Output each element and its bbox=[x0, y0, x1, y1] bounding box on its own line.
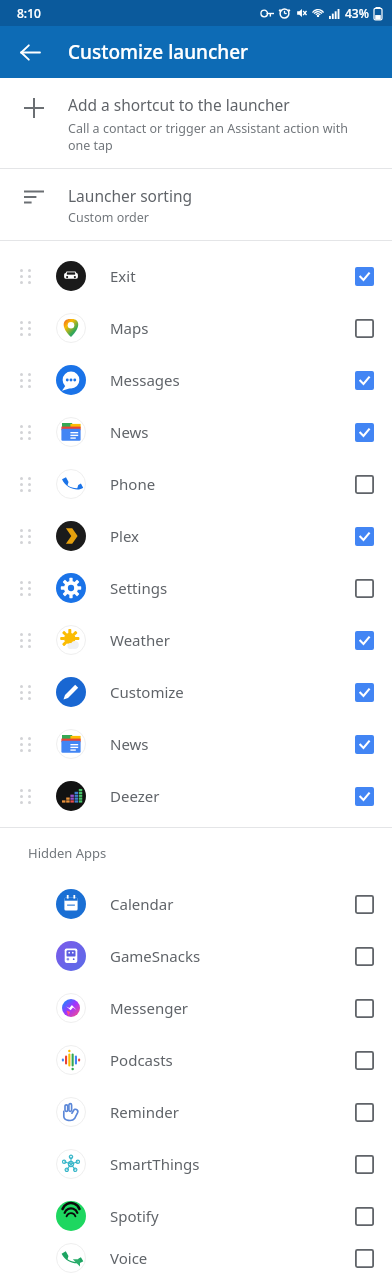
button[interactable]: Launcher sorting bbox=[0, 169, 392, 240]
staticText: Add a shortcut to the launcher bbox=[68, 94, 290, 115]
button[interactable]: Unchecked bbox=[336, 878, 392, 930]
button[interactable]: Unchecked bbox=[336, 458, 392, 510]
staticText: Weather bbox=[110, 630, 336, 650]
button[interactable]: Settings bbox=[0, 562, 392, 614]
staticText: Custom order bbox=[68, 209, 150, 226]
staticText: Hidden Apps bbox=[28, 844, 107, 862]
staticText: Call a contact or trigger an Assistant a… bbox=[68, 120, 358, 154]
staticText: 8:10 bbox=[17, 5, 41, 21]
button[interactable]: Unchecked bbox=[336, 302, 392, 354]
staticText: News bbox=[110, 734, 336, 754]
button[interactable]: Unchecked bbox=[336, 1190, 392, 1242]
button[interactable]: Customize bbox=[0, 666, 392, 718]
staticText: Calendar bbox=[110, 894, 336, 914]
staticText: Spotify bbox=[110, 1206, 336, 1226]
button[interactable]: Checked bbox=[336, 510, 392, 562]
button[interactable]: Calendar bbox=[0, 878, 392, 930]
button[interactable]: Unchecked bbox=[336, 1086, 392, 1138]
staticText: Maps bbox=[110, 318, 336, 338]
staticText: SmartThings bbox=[110, 1154, 336, 1174]
staticText: GameSnacks bbox=[110, 946, 336, 966]
button[interactable]: Unchecked bbox=[336, 562, 392, 614]
button[interactable]: Unchecked bbox=[336, 1242, 392, 1274]
staticText: Messenger bbox=[110, 998, 336, 1018]
staticText: Customize bbox=[110, 682, 336, 702]
button[interactable]: News bbox=[0, 718, 392, 770]
staticText: News bbox=[110, 422, 336, 442]
button[interactable]: Spotify bbox=[0, 1190, 392, 1242]
staticText: Podcasts bbox=[110, 1050, 336, 1070]
button[interactable]: Checked bbox=[336, 406, 392, 458]
button[interactable]: Checked bbox=[336, 718, 392, 770]
button[interactable]: News bbox=[0, 406, 392, 458]
button[interactable]: Deezer bbox=[0, 770, 392, 822]
staticText: Exit bbox=[110, 266, 336, 286]
button[interactable]: Unchecked bbox=[336, 1034, 392, 1086]
button[interactable]: Unchecked bbox=[336, 930, 392, 982]
button[interactable]: Unchecked bbox=[336, 1138, 392, 1190]
button[interactable]: Checked bbox=[336, 614, 392, 666]
button[interactable]: Exit bbox=[0, 250, 392, 302]
button[interactable]: Voice bbox=[0, 1242, 392, 1274]
staticText: Voice bbox=[110, 1248, 336, 1268]
button[interactable]: Checked bbox=[336, 354, 392, 406]
button[interactable]: Checked bbox=[336, 770, 392, 822]
button[interactable]: Messages bbox=[0, 354, 392, 406]
button[interactable]: Add a shortcut to the launcher bbox=[0, 78, 392, 168]
button[interactable]: Reminder bbox=[0, 1086, 392, 1138]
button[interactable]: Maps bbox=[0, 302, 392, 354]
button[interactable]: SmartThings bbox=[0, 1138, 392, 1190]
staticText: Reminder bbox=[110, 1102, 336, 1122]
button[interactable]: Checked bbox=[336, 666, 392, 718]
button[interactable]: Weather bbox=[0, 614, 392, 666]
staticText: Settings bbox=[110, 578, 336, 598]
button[interactable]: Phone bbox=[0, 458, 392, 510]
button[interactable]: Back bbox=[12, 34, 48, 70]
button[interactable]: Checked bbox=[336, 250, 392, 302]
staticText: Launcher sorting bbox=[68, 185, 193, 206]
button[interactable]: Plex bbox=[0, 510, 392, 562]
staticText: Messages bbox=[110, 370, 336, 390]
button[interactable]: GameSnacks bbox=[0, 930, 392, 982]
staticText: Customize launcher bbox=[68, 39, 249, 65]
staticText: 43% bbox=[345, 5, 369, 21]
button[interactable]: Podcasts bbox=[0, 1034, 392, 1086]
staticText: Phone bbox=[110, 474, 336, 494]
staticText: Plex bbox=[110, 526, 336, 546]
button[interactable]: Unchecked bbox=[336, 982, 392, 1034]
button[interactable]: Messenger bbox=[0, 982, 392, 1034]
staticText: Deezer bbox=[110, 786, 336, 806]
